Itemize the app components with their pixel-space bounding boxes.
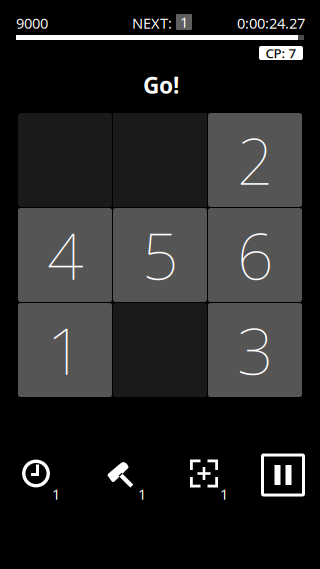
staticText: 3 (237, 307, 273, 392)
button[interactable]: 3 (208, 303, 302, 397)
button[interactable]: Add tile (177, 450, 229, 498)
staticText: 1 (47, 307, 83, 392)
staticText: 1 (220, 484, 228, 504)
button[interactable]: Pause (262, 455, 303, 495)
button[interactable]: Hammer (95, 450, 147, 498)
button[interactable]: 2 (208, 113, 302, 207)
staticText: 0:00:24.27 (237, 13, 305, 33)
staticText: CP: 7 (265, 44, 296, 62)
button[interactable]: 4 (18, 208, 112, 302)
button[interactable]: 1 (18, 303, 112, 397)
button[interactable]: Slow down time (9, 450, 61, 498)
staticText: Go! (143, 70, 179, 100)
button[interactable]: 5 (113, 208, 207, 302)
staticText: 2 (237, 117, 273, 202)
staticText: 5 (142, 212, 178, 297)
staticText: 1 (138, 484, 146, 504)
staticText: 9000 (16, 13, 48, 33)
button[interactable]: 6 (208, 208, 302, 302)
staticText: 6 (237, 212, 273, 297)
staticText: 1 (180, 12, 188, 32)
staticText: 4 (47, 212, 83, 297)
staticText: NEXT: (132, 13, 172, 33)
staticText: 1 (52, 484, 60, 504)
